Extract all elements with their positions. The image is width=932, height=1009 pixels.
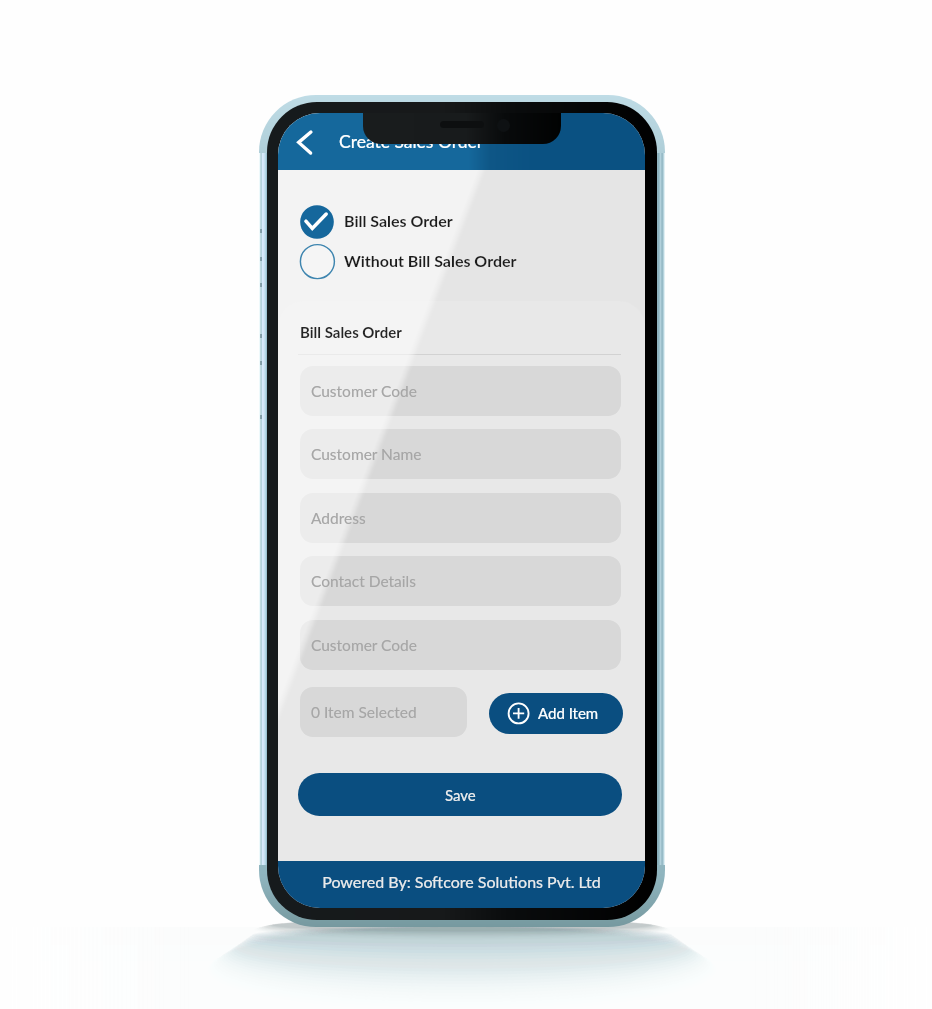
button[interactable]: Customer Name xyxy=(300,429,621,479)
staticText: Add Item xyxy=(538,704,599,722)
button[interactable]: Customer Code xyxy=(300,620,621,670)
button[interactable] xyxy=(300,244,568,279)
button[interactable] xyxy=(489,693,623,734)
button[interactable]: Save xyxy=(298,773,622,816)
staticText: Powered By: Softcore Solutions Pvt. Ltd xyxy=(322,872,601,891)
staticText: Contact Details xyxy=(311,572,416,591)
button[interactable]: Back xyxy=(289,123,327,161)
staticText: Create Sales Order xyxy=(339,131,484,152)
staticText: Address xyxy=(311,509,366,528)
staticText: Bill Sales Order xyxy=(344,211,453,230)
staticText: 0 Item Selected xyxy=(311,703,417,722)
button[interactable]: Powered By: Softcore Solutions Pvt. Ltd xyxy=(278,861,645,908)
button[interactable]: Customer Code xyxy=(300,366,621,416)
staticText: Customer Code xyxy=(311,636,417,655)
staticText: Save xyxy=(445,786,476,804)
staticText: Customer Name xyxy=(311,445,422,464)
staticText: Bill Sales Order xyxy=(300,323,402,341)
button[interactable]: Address xyxy=(300,493,621,543)
button[interactable] xyxy=(300,205,568,240)
button[interactable]: 0 Item Selected xyxy=(300,687,467,737)
button[interactable]: Contact Details xyxy=(300,556,621,606)
staticText: Customer Code xyxy=(311,382,417,401)
staticText: Without Bill Sales Order xyxy=(344,251,517,270)
